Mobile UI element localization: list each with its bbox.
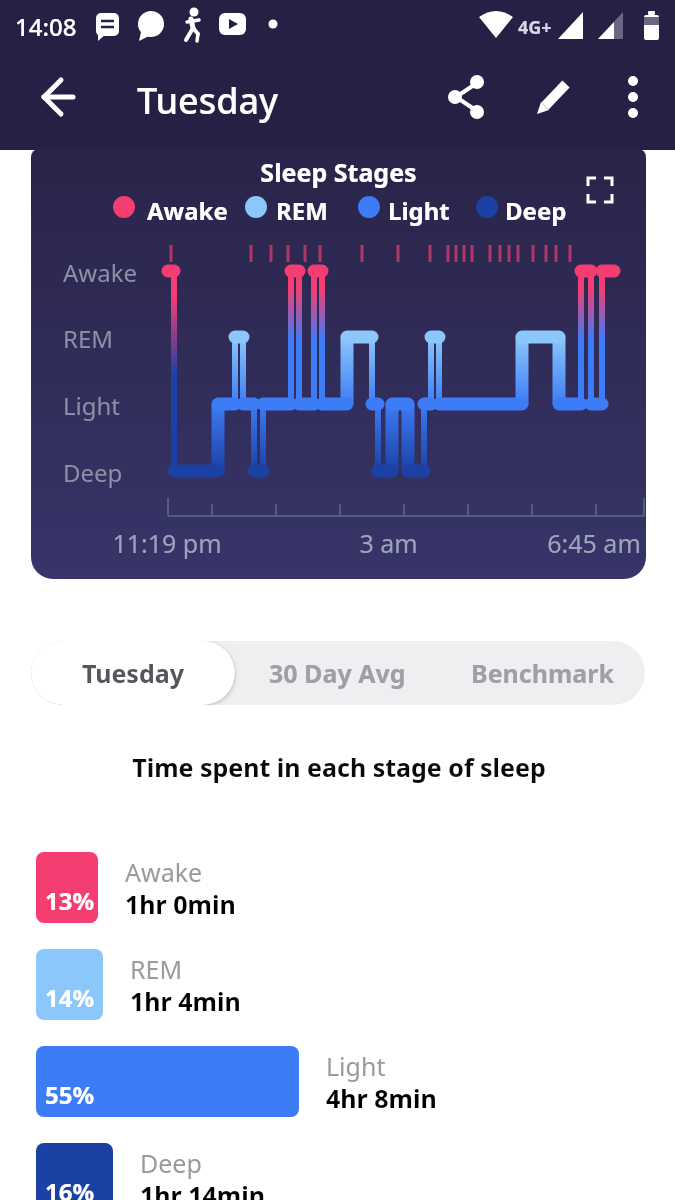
staticText: 4G+: [518, 15, 552, 40]
staticText: Awake: [147, 194, 228, 227]
staticText: 16%: [45, 1175, 95, 1200]
staticText: 1hr 14min: [140, 1178, 265, 1200]
staticText: 6:45 am: [547, 526, 641, 560]
staticText: Light: [388, 194, 450, 227]
staticText: 13%: [45, 884, 95, 917]
staticText: Awake: [63, 256, 138, 289]
staticText: Deep: [63, 456, 123, 489]
staticText: 14:08: [15, 10, 77, 43]
staticText: 55%: [45, 1078, 95, 1111]
staticText: REM: [130, 952, 183, 986]
staticText: 11:19 pm: [112, 526, 222, 560]
staticText: Light: [63, 389, 121, 422]
staticText: Awake: [125, 855, 203, 889]
staticText: 1hr 4min: [130, 984, 241, 1018]
staticText: Sleep Stages: [260, 155, 417, 189]
staticText: 30 Day Avg: [269, 656, 406, 690]
staticText: Light: [326, 1049, 386, 1083]
button[interactable]: 13%: [36, 852, 98, 923]
staticText: Benchmark: [471, 656, 614, 690]
staticText: REM: [276, 194, 328, 227]
staticText: Tuesday: [82, 656, 184, 690]
button[interactable]: [610, 74, 658, 122]
button[interactable]: 30 Day Avg: [235, 641, 440, 705]
staticText: 14%: [45, 981, 95, 1014]
staticText: Tuesday: [137, 76, 279, 125]
button[interactable]: Tuesday: [31, 641, 235, 705]
button[interactable]: [530, 74, 578, 122]
staticText: Time spent in each stage of sleep: [132, 750, 546, 784]
staticText: 3 am: [359, 526, 418, 560]
button[interactable]: 16%: [36, 1143, 113, 1200]
button[interactable]: [576, 166, 624, 214]
button[interactable]: 55%: [36, 1046, 299, 1117]
staticText: 4hr 8min: [326, 1081, 437, 1115]
staticText: 1hr 0min: [125, 887, 236, 921]
staticText: REM: [63, 322, 114, 355]
button[interactable]: Benchmark: [440, 641, 645, 705]
staticText: Deep: [140, 1146, 202, 1180]
button[interactable]: 14%: [36, 949, 103, 1020]
button[interactable]: [442, 74, 490, 122]
staticText: Deep: [505, 194, 567, 227]
button[interactable]: [26, 74, 74, 122]
